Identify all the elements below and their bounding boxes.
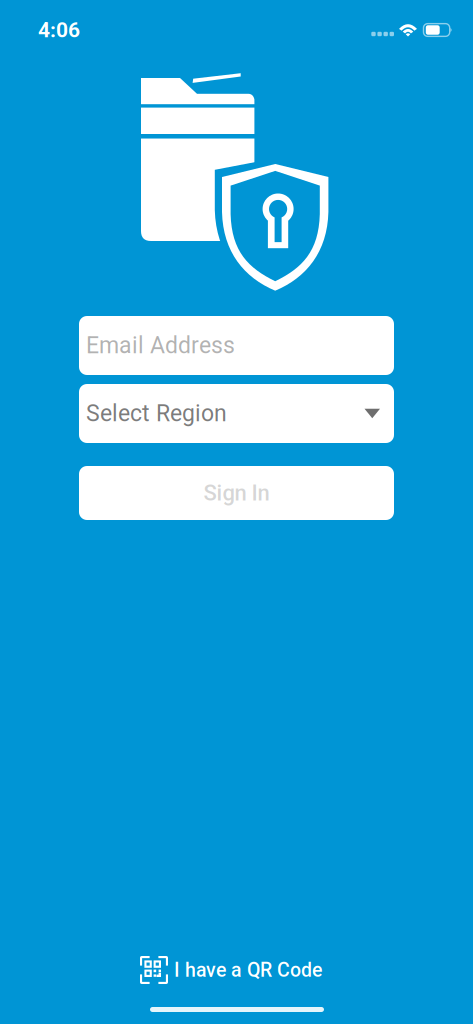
staticText: I have a QR Code	[174, 959, 322, 981]
staticText: Email Address	[86, 332, 235, 359]
button[interactable]: Sign In	[79, 466, 394, 520]
staticText: 4:06	[38, 18, 80, 42]
staticText: Select Region	[86, 400, 227, 427]
button[interactable]: Email Address	[79, 316, 394, 375]
staticText: Sign In	[203, 480, 269, 506]
button[interactable]: Select Region	[79, 384, 394, 443]
button[interactable]: I have a QR Code	[140, 950, 340, 990]
